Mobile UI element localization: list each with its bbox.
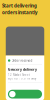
staticText: orders instantly bbox=[2, 9, 38, 16]
staticText: Start delivering bbox=[2, 3, 37, 9]
staticText: Grocery delivery bbox=[8, 67, 37, 72]
button[interactable]: Slide to accept order bbox=[8, 90, 42, 98]
staticText: Apt 4B - 0.8 mi away bbox=[8, 77, 36, 80]
staticText: Order received bbox=[12, 58, 33, 62]
staticText: 12 Market Street bbox=[8, 73, 30, 77]
